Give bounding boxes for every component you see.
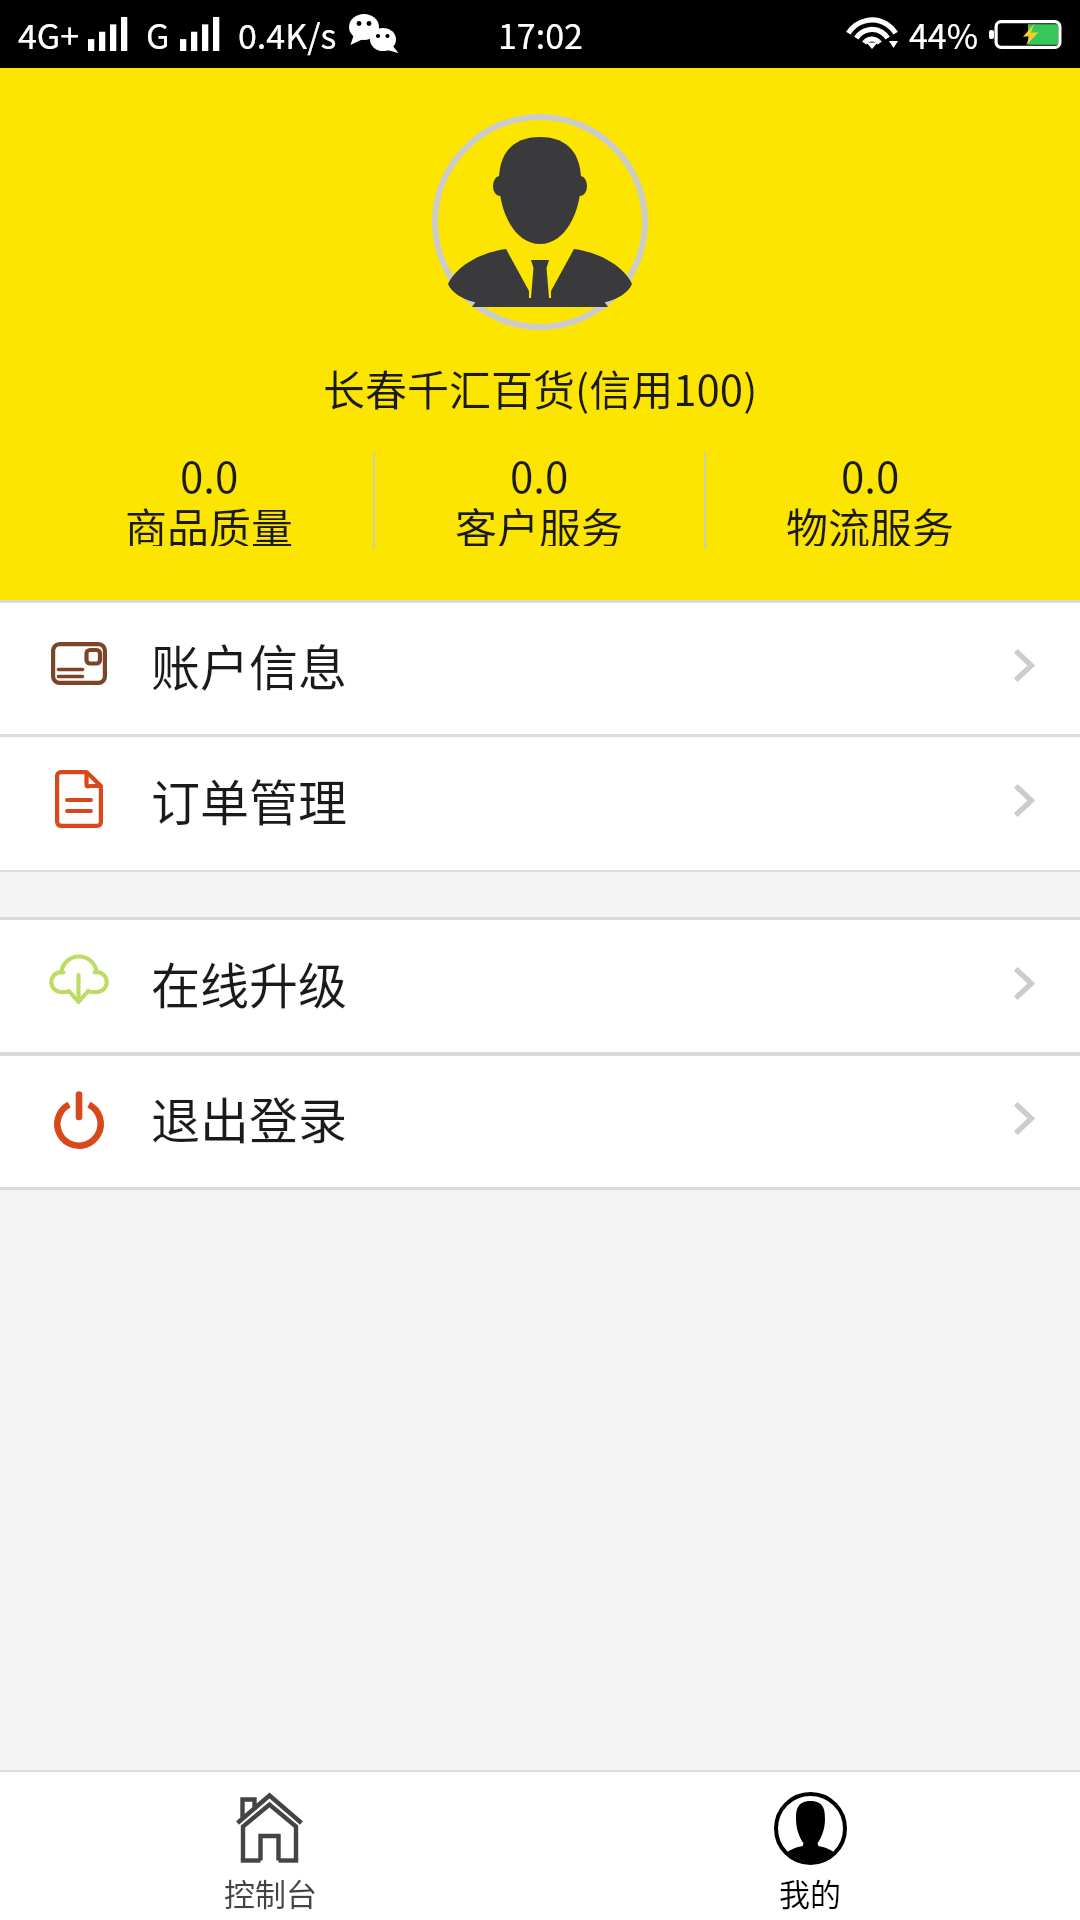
button[interactable]: 订单管理 [0,737,1080,870]
staticText: 0.0 [180,444,239,505]
button[interactable]: 退出登录 [0,1056,1080,1187]
button[interactable]: 在线升级 [0,920,1080,1052]
staticText: 退出登录 [151,1082,348,1153]
staticText: 长春千汇百货(信用100) [323,357,758,418]
staticText: 商品质量 [125,495,294,546]
button[interactable]: 控制台 [0,1772,540,1920]
staticText: 客户服务 [455,495,624,546]
staticText: G [146,10,170,59]
staticText: 在线升级 [151,947,348,1018]
button[interactable]: 账户信息 [0,603,1080,734]
staticText: 我的 [779,1870,841,1915]
staticText: 17:02 [498,10,583,59]
staticText: 0.4K/s [238,10,337,59]
staticText: 控制台 [224,1870,317,1915]
staticText: 4G+ [18,10,80,59]
staticText: 账户信息 [151,629,348,700]
staticText: 订单管理 [151,764,348,835]
staticText: 0.0 [841,444,900,505]
staticText: 物流服务 [786,495,955,546]
button[interactable]: 我的 [540,1772,1080,1920]
staticText: 44% [909,10,979,59]
staticText: 0.0 [510,444,569,505]
